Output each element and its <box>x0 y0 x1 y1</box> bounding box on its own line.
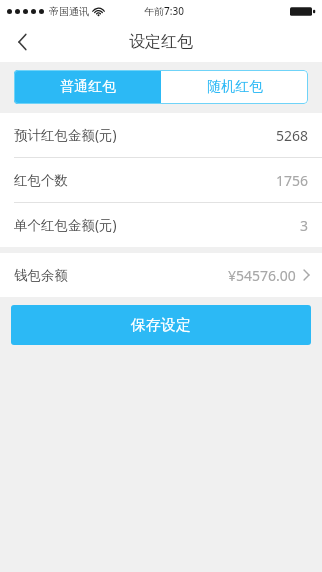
staticText: 3 <box>299 216 308 235</box>
staticText: 单个红包金额(元) <box>14 216 117 234</box>
button[interactable]: 钱包余额 <box>0 253 322 297</box>
button[interactable]: 普通红包 <box>14 70 161 104</box>
staticText: 1756 <box>275 171 308 190</box>
staticText: 5268 <box>275 126 308 145</box>
staticText: 预计红包金额(元) <box>14 126 117 144</box>
button[interactable]: Back <box>0 22 44 62</box>
staticText: 随机红包 <box>207 78 263 96</box>
button[interactable]: 红包个数 <box>0 158 322 202</box>
button[interactable]: 保存设定 <box>11 305 311 345</box>
button[interactable]: 随机红包 <box>161 70 308 104</box>
staticText: 帝国通讯 <box>49 5 89 18</box>
staticText: 红包个数 <box>14 172 68 189</box>
staticText: 钱包余额 <box>14 267 68 284</box>
staticText: 设定红包 <box>129 32 193 52</box>
staticText: 午前7:30 <box>144 4 184 18</box>
staticText: ¥54576.00 <box>228 266 296 285</box>
button[interactable]: 预计红包金额(元) <box>0 113 322 157</box>
staticText: 普通红包 <box>60 78 116 96</box>
button[interactable]: 单个红包金额(元) <box>0 203 322 247</box>
staticText: 保存设定 <box>131 316 191 335</box>
